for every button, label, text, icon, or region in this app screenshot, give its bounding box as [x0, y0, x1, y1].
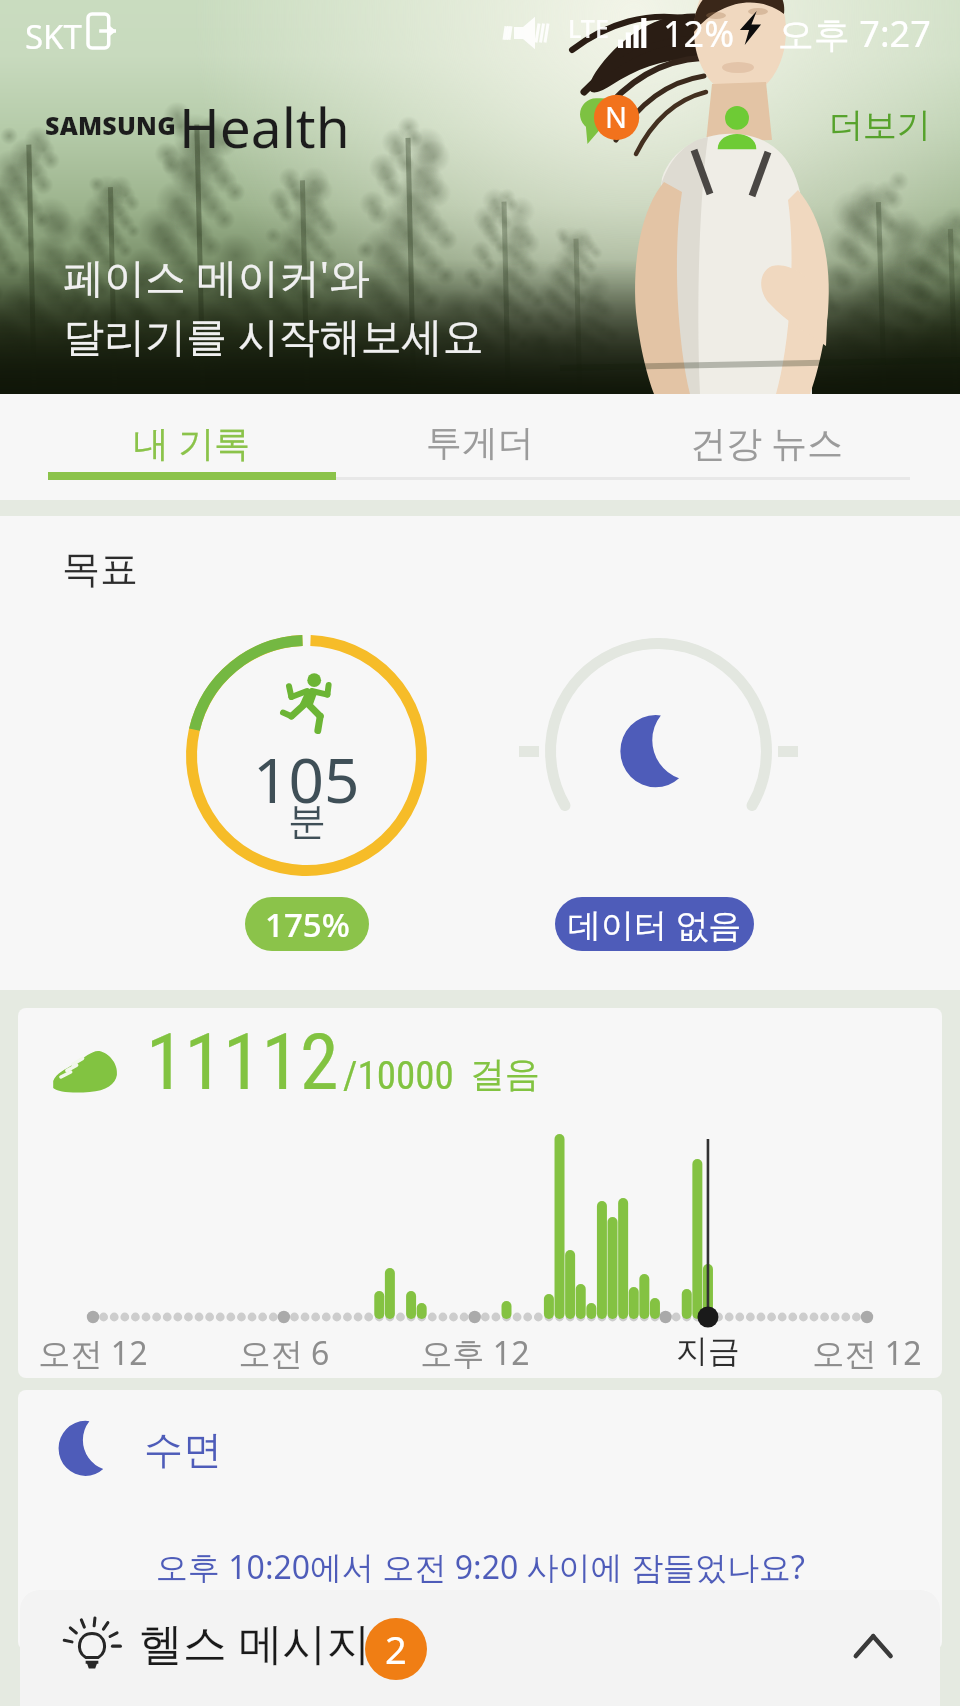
staticText: 105: [253, 737, 360, 821]
staticText: 오전 12: [18, 1331, 183, 1375]
button[interactable]: Expand health messages: [836, 1620, 896, 1680]
button[interactable]: Notices: [580, 92, 642, 154]
staticText: 11112: [146, 1017, 339, 1108]
staticText: 오후 7:27: [778, 9, 931, 58]
staticText: 목표: [62, 545, 138, 593]
button[interactable]: 11112: [18, 1008, 942, 1378]
staticText: SKT: [25, 14, 82, 59]
staticText: 더보기: [829, 104, 931, 147]
staticText: 데이터 없음: [568, 902, 742, 947]
button[interactable]: 내 기록: [48, 394, 336, 490]
staticText: SAMSUNG: [45, 108, 176, 142]
staticText: 오후 12: [385, 1331, 565, 1375]
button[interactable]: 175%: [245, 897, 369, 951]
staticText: 걸음: [470, 1052, 540, 1096]
staticText: 오후 10:20에서 오전 9:20 사이에 잠들었나요?: [156, 1545, 805, 1589]
staticText: 오전 6: [194, 1331, 374, 1375]
button[interactable]: 데이터 없음: [555, 897, 754, 951]
button[interactable]: 헬스 메시지: [20, 1590, 940, 1706]
staticText: 달리기를 시작해보세요: [63, 307, 484, 363]
staticText: 2: [385, 1623, 407, 1675]
staticText: N: [605, 97, 628, 136]
staticText: 오전 12: [777, 1331, 942, 1375]
staticText: 건강 뉴스: [690, 418, 844, 467]
staticText: LTE: [568, 11, 609, 45]
button[interactable]: 수면: [18, 1390, 942, 1650]
staticText: 헬스 메시지: [139, 1612, 371, 1672]
staticText: Health: [179, 89, 350, 164]
button[interactable]: 더보기: [821, 98, 939, 153]
staticText: 12%: [663, 9, 735, 58]
staticText: 투게더: [426, 420, 534, 465]
staticText: 175%: [265, 902, 350, 947]
button[interactable]: 투게더: [336, 394, 623, 490]
button[interactable]: Profile: [714, 105, 760, 151]
staticText: /10000: [343, 1053, 454, 1099]
staticText: 수면: [144, 1425, 222, 1474]
staticText: 지금: [618, 1331, 798, 1371]
button[interactable]: 건강 뉴스: [623, 394, 910, 490]
staticText: 페이스 메이커'와: [63, 248, 370, 304]
staticText: 내 기록: [133, 418, 251, 467]
staticText: 분: [288, 797, 326, 845]
